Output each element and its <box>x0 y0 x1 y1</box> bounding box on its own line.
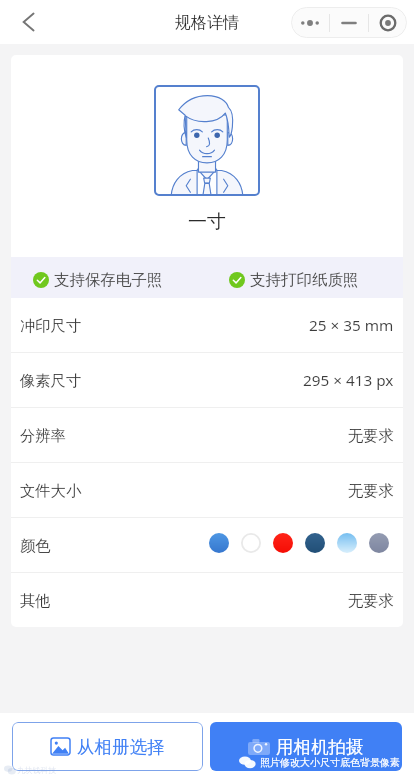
button[interactable]: Background colour option <box>369 533 389 553</box>
staticText: 九块钱科技 <box>17 765 56 775</box>
staticText: 295 × 413 px <box>303 370 394 391</box>
button[interactable]: 从相册选择 <box>12 722 203 771</box>
button[interactable]: Close <box>369 7 407 38</box>
staticText: 无要求 <box>348 426 394 445</box>
staticText: 从相册选择 <box>77 736 165 758</box>
staticText: 一寸 <box>11 210 403 234</box>
button[interactable]: Background colour option <box>337 533 357 553</box>
button[interactable]: Minimize <box>330 7 368 38</box>
staticText: 支持打印纸质照 <box>250 270 359 290</box>
button[interactable]: More <box>291 7 329 38</box>
button[interactable]: Background colour option <box>305 533 325 553</box>
staticText: 25 × 35 mm <box>309 315 394 336</box>
button[interactable]: Background colour option <box>273 533 293 553</box>
staticText: 颜色 <box>20 536 51 555</box>
staticText: 其他 <box>20 591 51 610</box>
staticText: 支持保存电子照 <box>54 270 163 290</box>
staticText: 冲印尺寸 <box>20 316 82 335</box>
staticText: 文件大小 <box>20 481 82 500</box>
staticText: 无要求 <box>348 481 394 500</box>
staticText: 用相机拍摄 <box>276 736 364 758</box>
staticText: 无要求 <box>348 591 394 610</box>
button[interactable]: Back <box>10 4 46 40</box>
staticText: 规格详情 <box>175 13 239 33</box>
staticText: 照片修改大小尺寸底色背景像素 <box>260 756 400 769</box>
button[interactable]: Background colour option <box>209 533 229 553</box>
staticText: 像素尺寸 <box>20 371 82 390</box>
button[interactable]: Background colour option <box>241 533 261 553</box>
staticText: 分辨率 <box>20 426 66 445</box>
button[interactable]: 用相机拍摄 <box>210 722 402 771</box>
